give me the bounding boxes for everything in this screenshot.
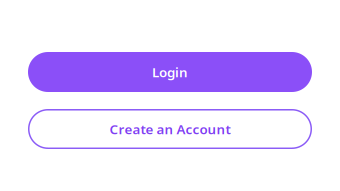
button[interactable]: Create an Account <box>28 109 312 149</box>
staticText: Login <box>152 63 188 81</box>
staticText: Create an Account <box>109 120 230 138</box>
button[interactable]: Login <box>28 52 312 92</box>
